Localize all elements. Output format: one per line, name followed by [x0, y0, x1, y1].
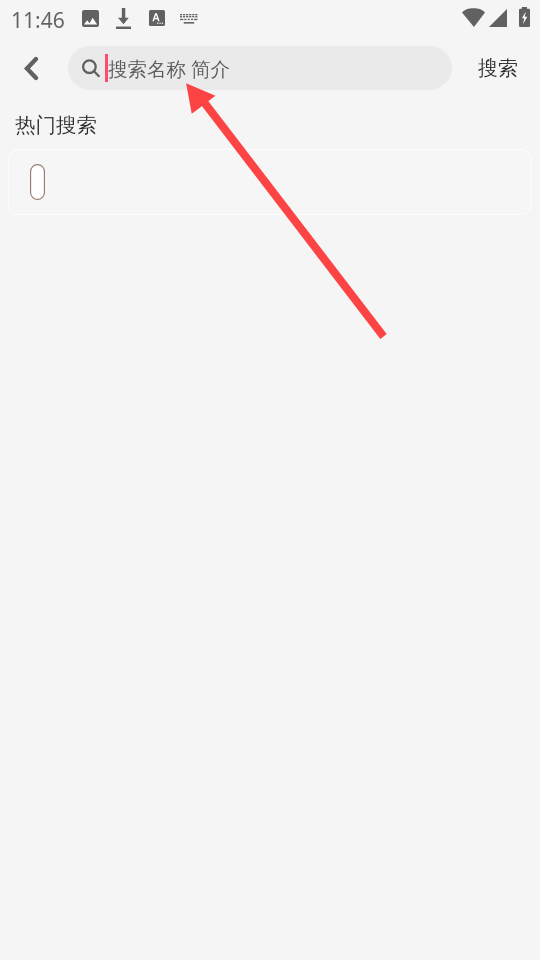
staticText: 搜索名称 简介 [108, 55, 231, 82]
button[interactable] [30, 164, 45, 200]
button[interactable]: 搜索名称 简介 [68, 46, 452, 90]
button[interactable]: Back [4, 45, 58, 91]
staticText: 热门搜索 [15, 112, 97, 138]
button[interactable]: 搜索 [456, 45, 540, 91]
staticText: 搜索 [478, 56, 518, 81]
staticText: 11:46 [11, 6, 65, 35]
